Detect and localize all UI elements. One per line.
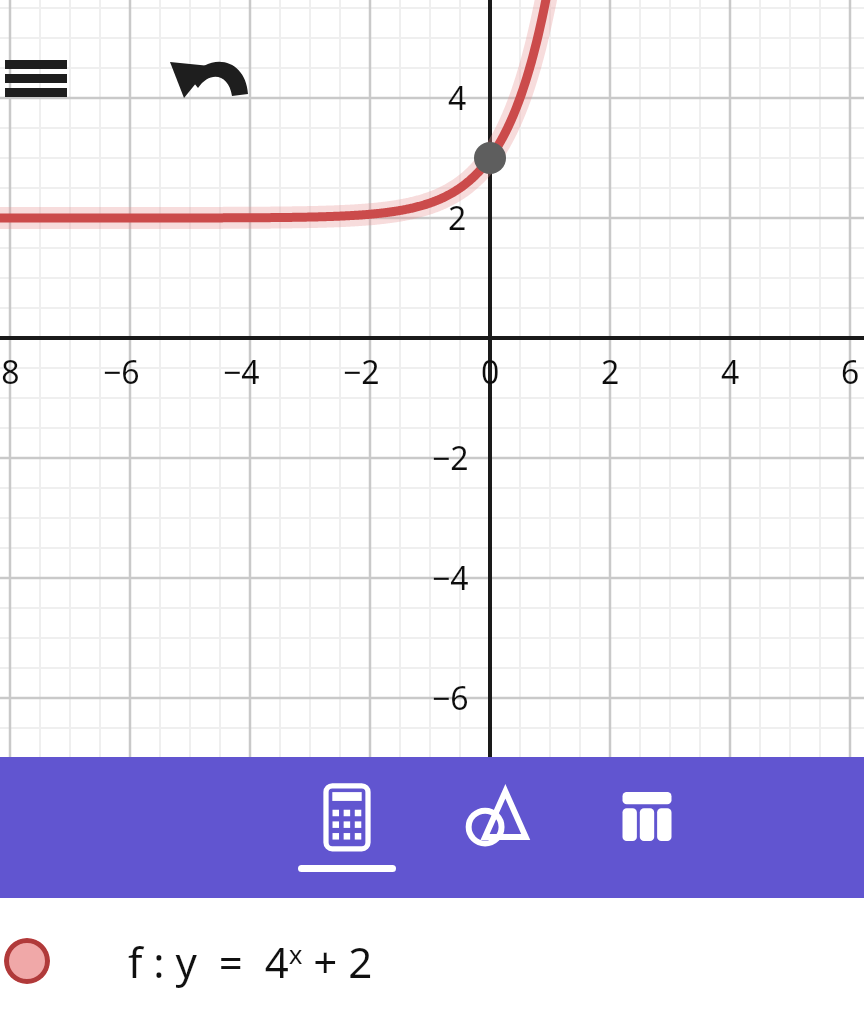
staticText: 4 — [721, 350, 740, 394]
button[interactable]: Undo — [162, 44, 258, 116]
staticText: −8 — [0, 350, 20, 394]
staticText: −2 — [432, 436, 469, 480]
button[interactable]: Menu — [0, 44, 76, 110]
staticText: −4 — [223, 350, 260, 394]
button[interactable]: f : y = 4x + 2 — [0, 898, 864, 1024]
staticText: 0 — [481, 350, 500, 394]
button[interactable]: Calculator — [272, 757, 422, 898]
staticText: −6 — [103, 350, 140, 394]
button[interactable]: Geometry — [422, 757, 572, 898]
staticText: −2 — [343, 350, 380, 394]
button[interactable]: Table — [572, 757, 722, 898]
staticText: −4 — [432, 556, 469, 600]
staticText: 2 — [448, 196, 467, 240]
staticText: f : y = 4x + 2 — [128, 933, 373, 990]
staticText: −6 — [432, 676, 469, 720]
staticText: 4 — [448, 76, 467, 120]
staticText: 2 — [601, 350, 620, 394]
staticText: 6 — [841, 350, 860, 394]
